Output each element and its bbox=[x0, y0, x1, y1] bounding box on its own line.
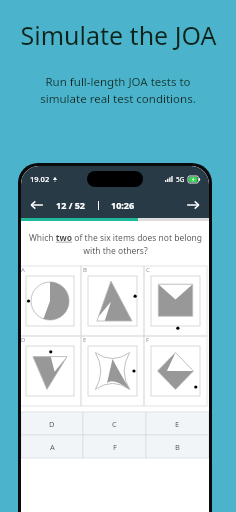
button[interactable]: B bbox=[146, 435, 209, 458]
button[interactable]: E bbox=[146, 412, 209, 435]
button[interactable]: D bbox=[21, 412, 83, 435]
staticText: B bbox=[175, 442, 180, 452]
button[interactable]: Previous question bbox=[28, 196, 46, 214]
button[interactable]: A bbox=[21, 435, 83, 458]
staticText: E bbox=[175, 419, 180, 429]
staticText: B bbox=[83, 266, 87, 274]
button[interactable]: C bbox=[144, 266, 207, 336]
staticText: Which two of the six items does not belo… bbox=[22, 232, 209, 257]
staticText: F bbox=[113, 442, 117, 452]
staticText: 10:26 bbox=[111, 199, 135, 211]
button[interactable]: A bbox=[21, 266, 81, 336]
staticText: C bbox=[112, 419, 117, 429]
staticText: 19.02 bbox=[30, 174, 50, 184]
staticText: F bbox=[146, 336, 150, 344]
staticText: 5G bbox=[176, 175, 185, 184]
staticText: D bbox=[21, 336, 26, 344]
button[interactable]: B bbox=[81, 266, 144, 336]
button[interactable]: C bbox=[83, 412, 146, 435]
staticText: D bbox=[49, 419, 55, 429]
button[interactable]: F bbox=[83, 435, 146, 458]
staticText: C bbox=[146, 266, 150, 274]
staticText: Run full-length JOA tests to simulate re… bbox=[40, 74, 196, 107]
staticText: 12 / 52 bbox=[56, 199, 86, 211]
button[interactable]: D bbox=[21, 336, 81, 406]
button[interactable]: F bbox=[144, 336, 207, 406]
staticText: A bbox=[21, 266, 25, 274]
button[interactable]: Next question bbox=[184, 196, 202, 214]
staticText: Simulate the JOA bbox=[20, 18, 217, 52]
staticText: A bbox=[50, 442, 55, 452]
button[interactable]: E bbox=[81, 336, 144, 406]
staticText: E bbox=[83, 336, 87, 344]
